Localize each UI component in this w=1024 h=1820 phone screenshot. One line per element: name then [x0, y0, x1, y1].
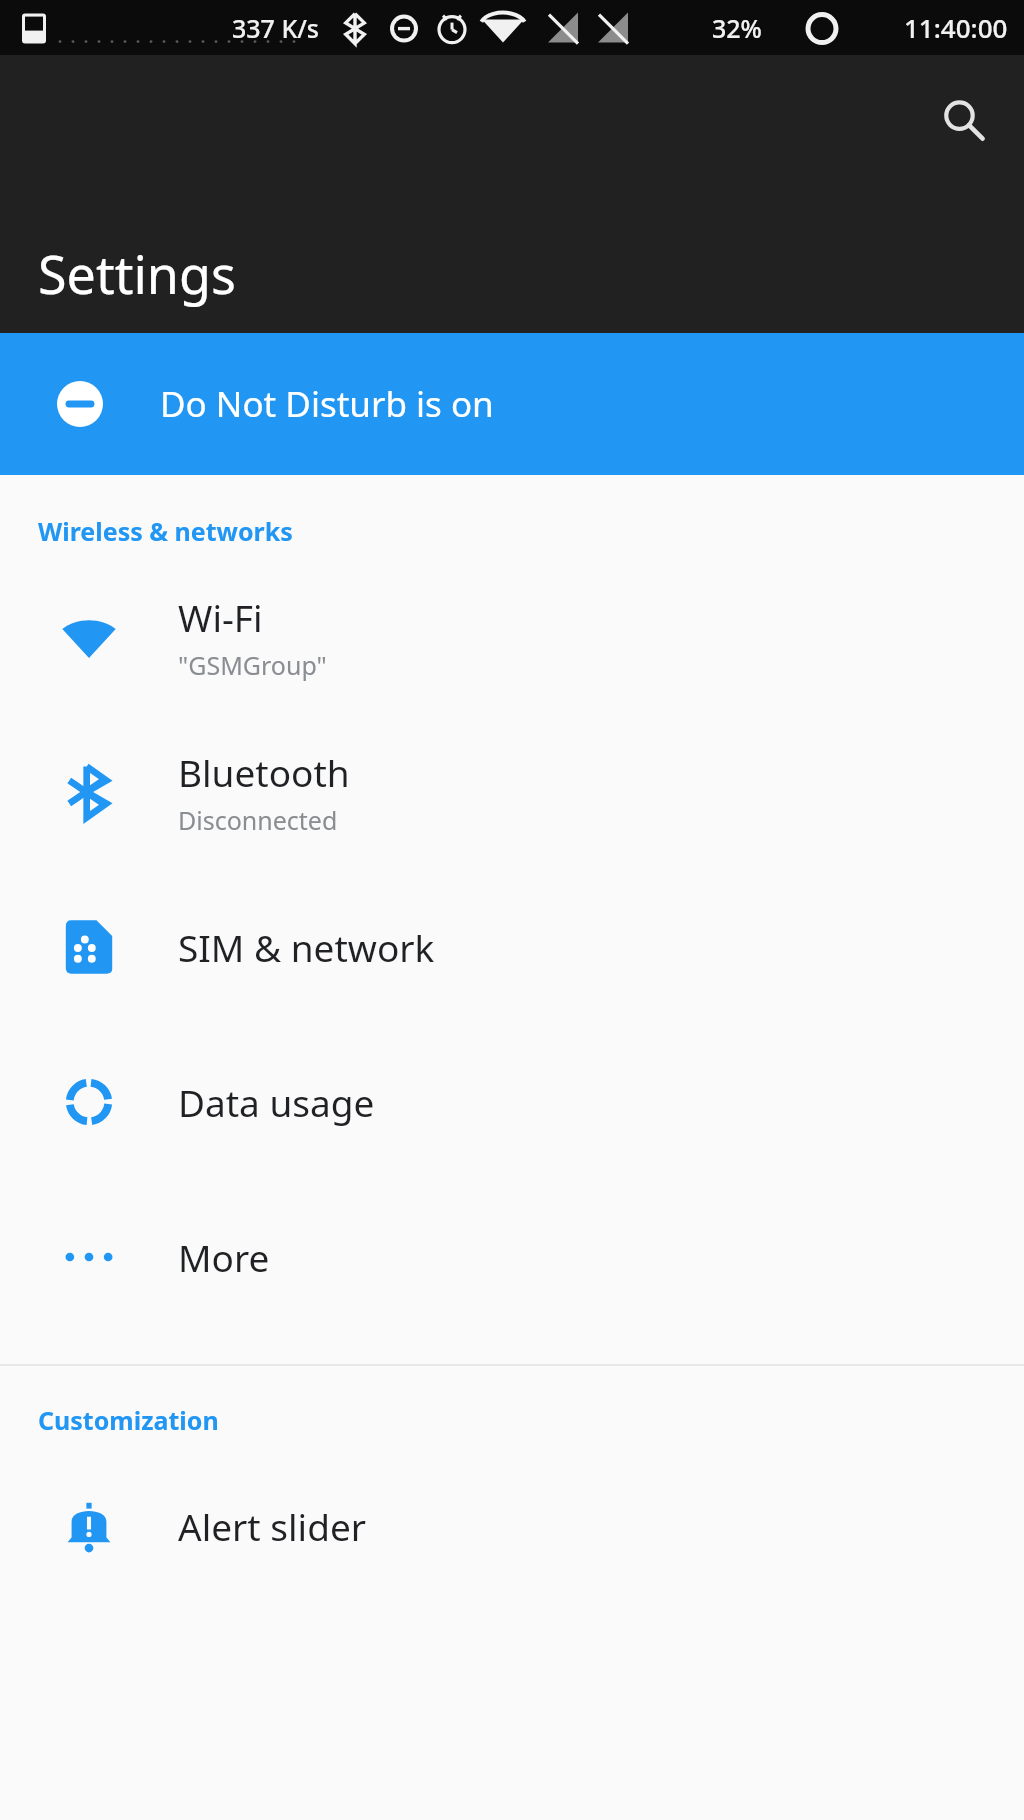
- staticText: Alert slider: [178, 1501, 367, 1551]
- button[interactable]: SIM & network: [0, 869, 1024, 1024]
- staticText: 337 K/s: [232, 11, 319, 45]
- staticText: Settings: [38, 238, 236, 309]
- staticText: Disconnected: [178, 803, 338, 837]
- staticText: "GSMGroup": [178, 648, 327, 682]
- button[interactable]: Bluetooth: [0, 714, 1024, 869]
- staticText: Customization: [38, 1403, 219, 1437]
- button[interactable]: Search: [924, 81, 1002, 159]
- button[interactable]: More: [0, 1179, 1024, 1334]
- staticText: Bluetooth: [178, 747, 350, 797]
- button[interactable]: Wi-Fi: [0, 559, 1024, 714]
- button[interactable]: Alert slider: [0, 1448, 1024, 1603]
- staticText: SIM & network: [178, 922, 435, 972]
- staticText: Do Not Disturb is on: [160, 380, 494, 428]
- staticText: Data usage: [178, 1077, 375, 1127]
- button[interactable]: Data usage: [0, 1024, 1024, 1179]
- staticText: Wireless & networks: [38, 514, 293, 548]
- button[interactable]: Do Not Disturb is on: [0, 333, 1024, 475]
- staticText: 32%: [712, 11, 762, 45]
- staticText: More: [178, 1232, 270, 1282]
- staticText: 11:40:00: [904, 10, 1008, 45]
- staticText: Wi-Fi: [178, 592, 263, 642]
